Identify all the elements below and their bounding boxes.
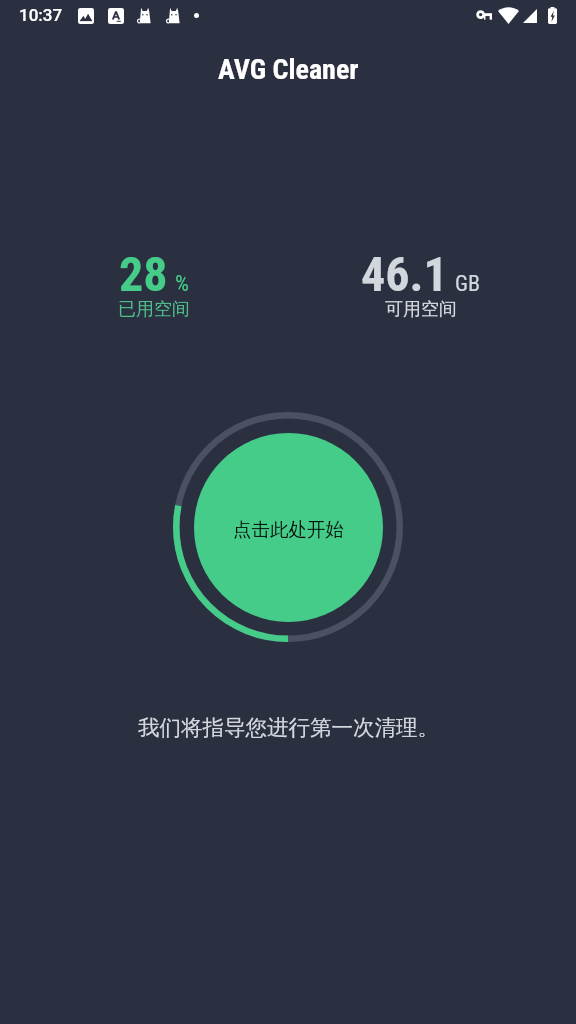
staticText: % (175, 271, 189, 297)
staticText: 点击此处开始 (233, 518, 344, 541)
staticText: 可用空间 (385, 298, 457, 321)
other: App notification (108, 8, 124, 24)
other: Mobile signal (523, 9, 537, 23)
staticText: 10:37 (19, 5, 63, 25)
button[interactable]: 46.1 (361, 246, 481, 325)
other: Wi-Fi (498, 8, 519, 24)
other: Notification (165, 7, 182, 24)
staticText: 我们将指导您进行第一次清理。 (138, 714, 439, 741)
staticText: 28 (119, 246, 168, 302)
staticText: GB (455, 271, 481, 297)
button[interactable]: AVG Cleaner (0, 0, 576, 100)
other: Notification (136, 7, 153, 24)
other: VPN (476, 10, 492, 21)
staticText: AVG Cleaner (218, 53, 359, 86)
staticText: 已用空间 (118, 298, 190, 321)
other: Battery charging (548, 7, 557, 24)
staticText: 46.1 (361, 246, 448, 302)
button[interactable]: 点击此处开始 (194, 433, 383, 622)
other: Screenshot (78, 8, 94, 24)
button[interactable]: 28 (118, 246, 190, 325)
